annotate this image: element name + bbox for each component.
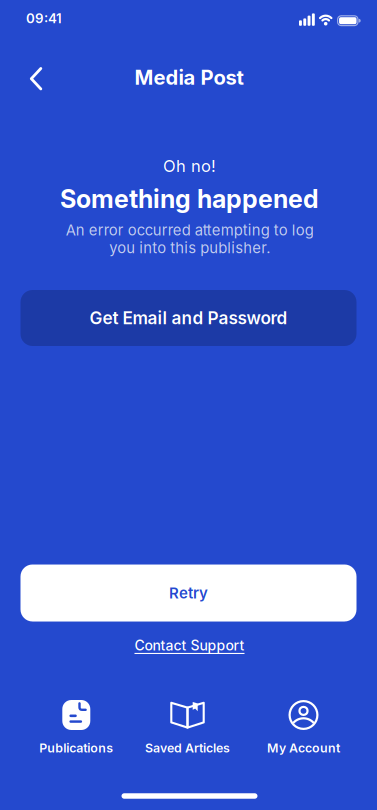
button[interactable]: Back — [13, 55, 57, 99]
staticText: Publications — [39, 740, 113, 755]
button[interactable]: Contact Support — [134, 637, 244, 654]
button[interactable]: Get Email and Password — [20, 290, 356, 346]
staticText: 09:41 — [26, 10, 62, 26]
button[interactable]: Publications — [21, 697, 131, 761]
staticText: Media Post — [134, 65, 243, 90]
staticText: My Account — [267, 740, 340, 755]
staticText: Retry — [169, 584, 208, 602]
staticText: Something happened — [60, 184, 319, 214]
staticText: Get Email and Password — [89, 308, 287, 328]
staticText: Oh no! — [163, 156, 216, 176]
button[interactable]: Retry — [20, 564, 356, 621]
staticText: Contact Support — [134, 637, 244, 654]
button[interactable]: Saved Articles — [132, 697, 242, 761]
staticText: An error occurred attempting to log you … — [65, 221, 313, 257]
button[interactable]: My Account — [248, 697, 358, 761]
staticText: Saved Articles — [145, 740, 230, 755]
